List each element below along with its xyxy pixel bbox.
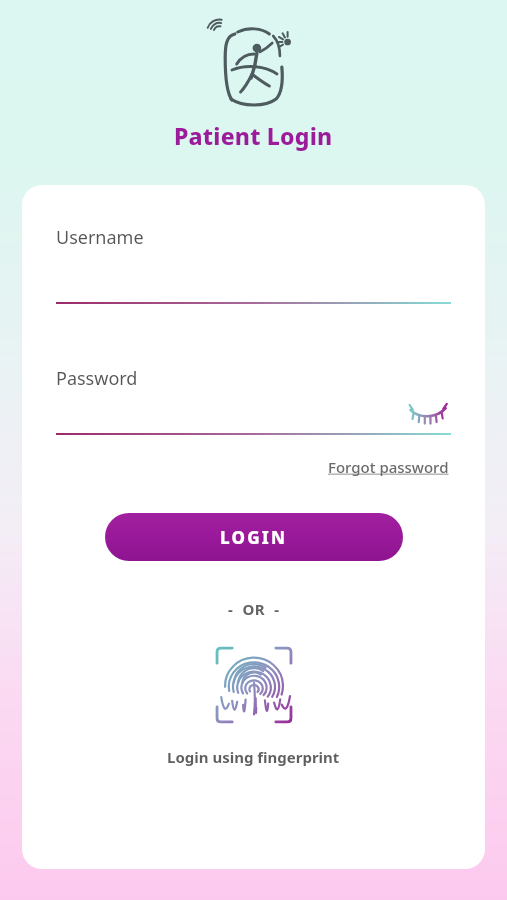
button[interactable]: Forgot password	[326, 453, 451, 481]
button[interactable]: Login using fingerprint	[210, 641, 298, 729]
button[interactable]: Show password	[405, 399, 451, 427]
staticText: - OR -	[228, 599, 280, 619]
button[interactable]: LOGIN	[105, 513, 403, 561]
button[interactable]	[56, 302, 451, 304]
staticText: Username	[56, 225, 144, 250]
staticText: Login using fingerprint	[167, 747, 340, 767]
staticText: LOGIN	[220, 526, 288, 549]
staticText: Password	[56, 366, 138, 391]
staticText: Patient Login	[174, 120, 333, 151]
button[interactable]	[56, 433, 451, 435]
other: App logo	[206, 12, 302, 112]
staticText: Forgot password	[328, 457, 449, 477]
